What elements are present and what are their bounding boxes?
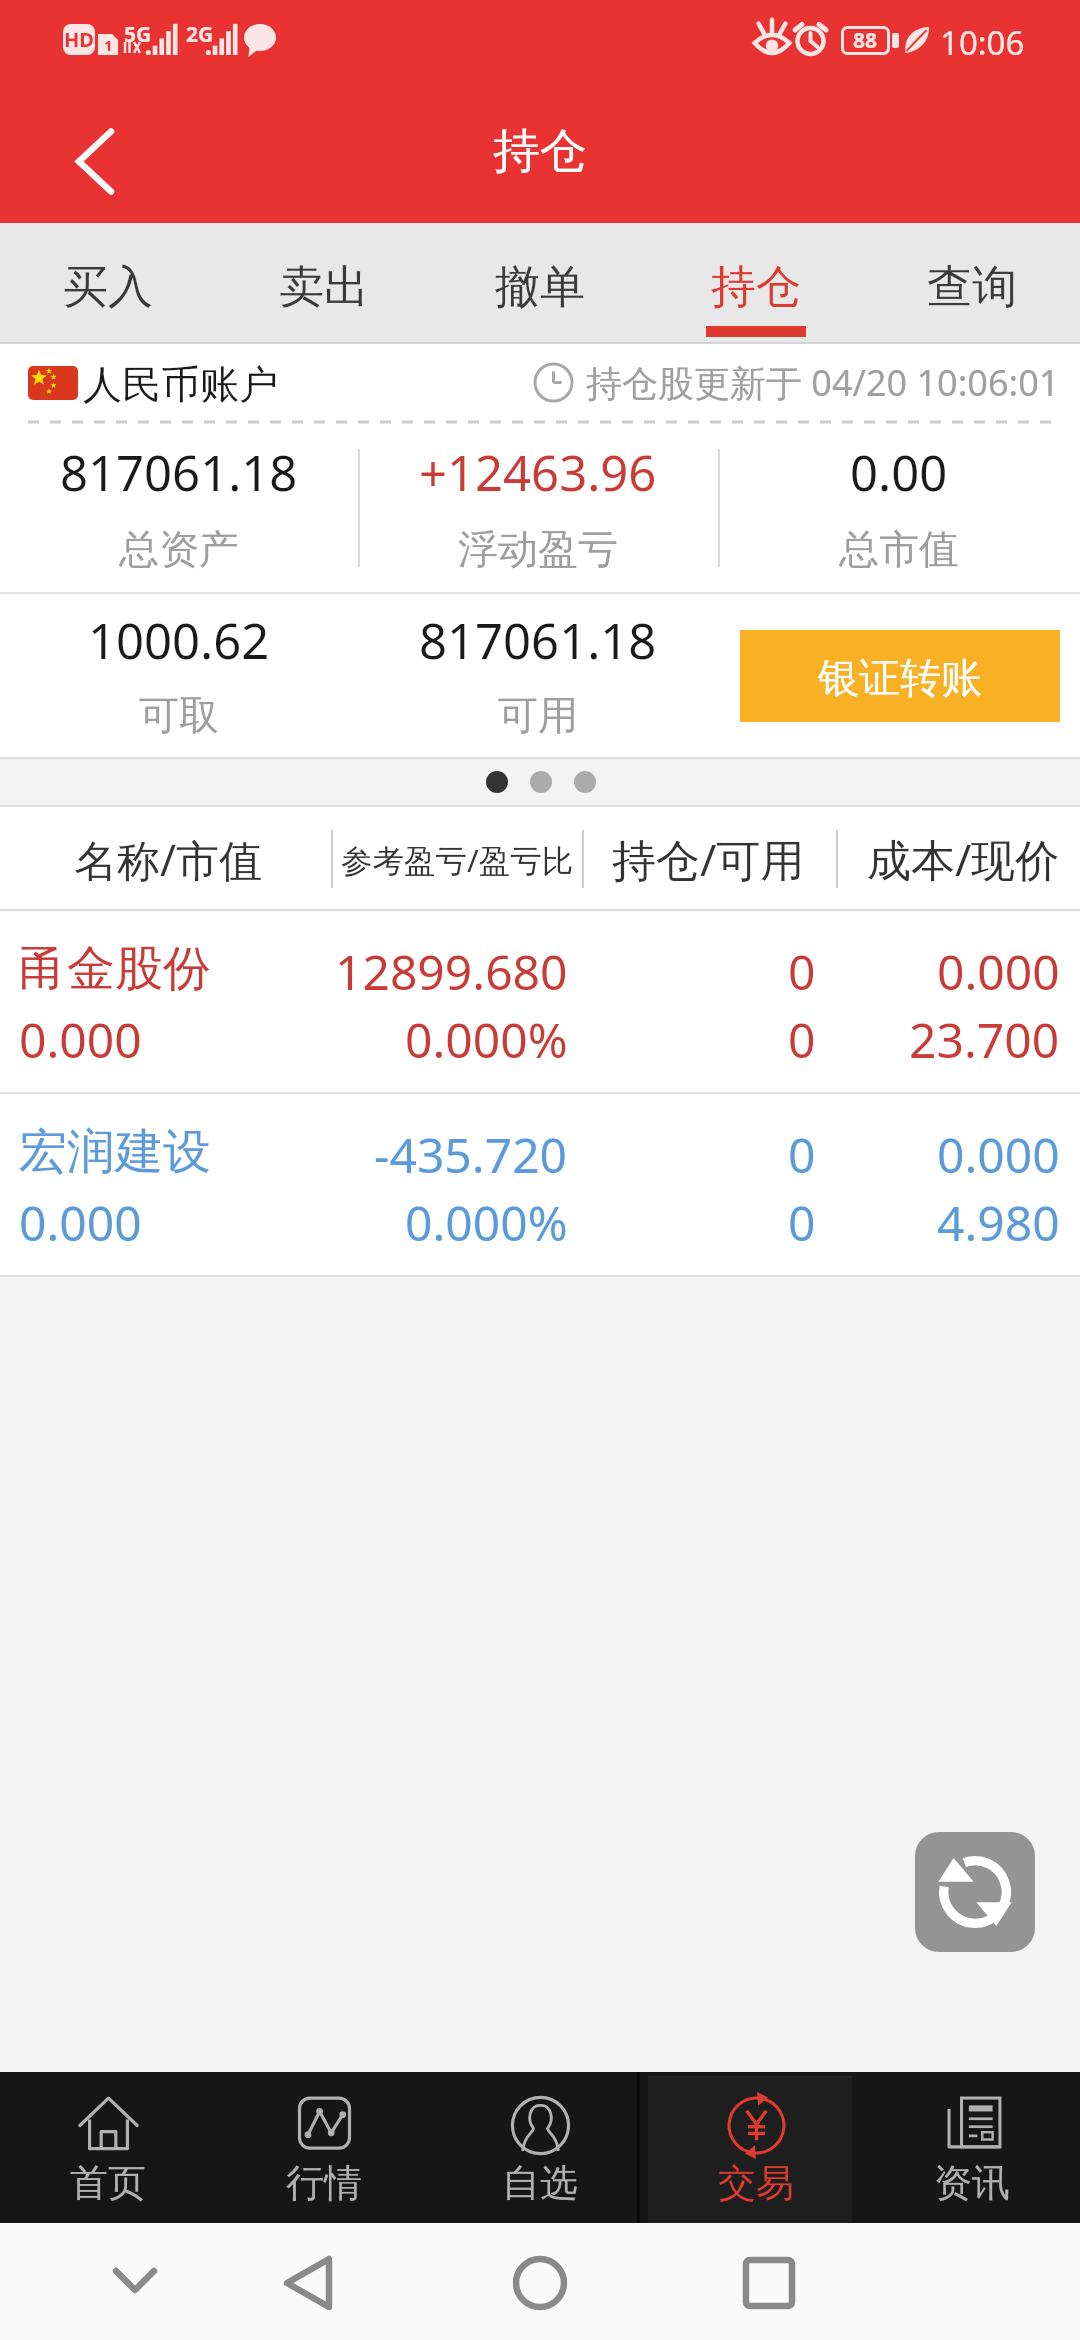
staticText: 0.000 (19, 1007, 142, 1072)
button[interactable]: 卖出 (216, 223, 432, 344)
button[interactable]: 查询 (864, 223, 1080, 344)
button[interactable]: 首页 (0, 2072, 216, 2223)
button[interactable]: 交易 (648, 2072, 864, 2223)
staticText: 名称/市值 (74, 830, 262, 889)
staticText: 买入 (63, 259, 153, 316)
staticText: HD (64, 26, 94, 53)
button[interactable]: 自选 (432, 2072, 648, 2223)
button[interactable]: 买入 (0, 223, 216, 344)
staticText: 4.980 (937, 1190, 1060, 1255)
staticText: 银证转账 (818, 653, 982, 705)
staticText: 成本/现价 (867, 829, 1060, 889)
staticText: 持仓 (711, 259, 801, 316)
button[interactable]: Back (253, 2227, 363, 2337)
staticText: 0 (788, 939, 816, 1004)
staticText: 0 (788, 1190, 816, 1255)
staticText: 总市值 (839, 524, 959, 574)
staticText: 可用 (498, 690, 578, 740)
staticText: 行情 (286, 2159, 362, 2207)
staticText: 人民币账户 (83, 360, 278, 409)
staticText: 0.000 (19, 1190, 142, 1255)
staticText: 1 (104, 35, 113, 55)
staticText: 12899.680 (335, 939, 568, 1004)
staticText: 1000.62 (88, 607, 270, 674)
staticText: 0.000% (405, 1007, 568, 1072)
staticText: 查询 (927, 259, 1017, 316)
button[interactable]: Refresh (915, 1832, 1035, 1952)
staticText: 23.700 (909, 1007, 1060, 1072)
staticText: 0 (788, 1007, 816, 1072)
button[interactable]: 宏润建设 (0, 1094, 1080, 1277)
staticText: 持仓股更新于 04/20 10:06:01 (586, 358, 1060, 407)
staticText: 817061.18 (419, 607, 657, 674)
staticText: 甬金股份 (19, 939, 211, 999)
button[interactable]: Home (485, 2227, 595, 2337)
staticText: 5G (124, 20, 152, 49)
staticText: 0.000 (937, 939, 1060, 1004)
staticText: 首页 (70, 2159, 146, 2207)
button[interactable]: Recents (714, 2227, 824, 2337)
button[interactable]: 撤单 (432, 223, 648, 344)
button[interactable]: 银证转账 (740, 630, 1060, 722)
staticText: 自选 (502, 2159, 578, 2207)
staticText: +12463.96 (419, 439, 657, 506)
button[interactable]: 资讯 (864, 2072, 1080, 2223)
staticText: 交易 (718, 2159, 794, 2207)
staticText: 卖出 (279, 259, 369, 316)
staticText: 持仓 (493, 122, 587, 181)
staticText: 0.00 (850, 439, 948, 506)
button[interactable]: 持仓 (648, 223, 864, 344)
staticText: 撤单 (495, 259, 585, 316)
button[interactable]: Hide keyboard (80, 2227, 190, 2337)
staticText: 817061.18 (60, 439, 298, 506)
button[interactable]: 甬金股份 (0, 911, 1080, 1094)
button[interactable]: 行情 (216, 2072, 432, 2223)
staticText: 0.000 (937, 1122, 1060, 1187)
staticText: 总资产 (119, 524, 239, 574)
staticText: 88 (853, 26, 878, 55)
staticText: 参考盈亏/盈亏比 (341, 838, 574, 881)
staticText: -435.720 (374, 1122, 568, 1187)
button[interactable]: Back (0, 88, 140, 223)
staticText: 浮动盈亏 (458, 524, 618, 574)
staticText: 0 (788, 1122, 816, 1187)
staticText: 持仓/可用 (612, 829, 805, 889)
staticText: 10:06 (940, 20, 1025, 65)
staticText: 0.000% (405, 1190, 568, 1255)
staticText: 资讯 (934, 2159, 1010, 2207)
staticText: 可取 (139, 690, 219, 740)
staticText: 2G (186, 20, 214, 49)
staticText: 宏润建设 (19, 1122, 211, 1182)
